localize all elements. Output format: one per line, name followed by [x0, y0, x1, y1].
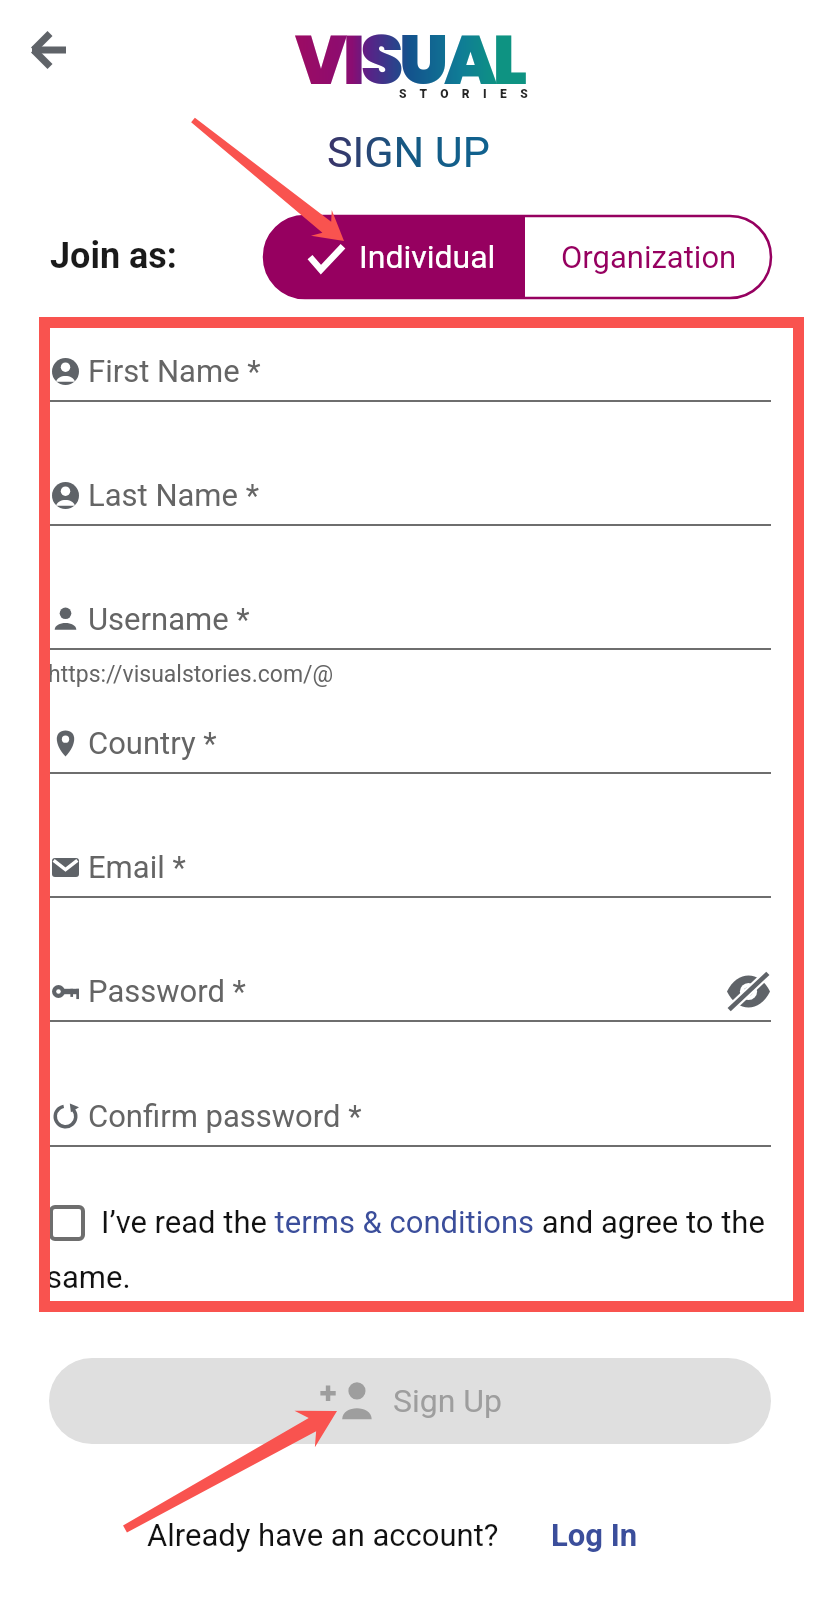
staticText: S T O R I E S [399, 87, 533, 101]
button[interactable]: First Name * [52, 347, 771, 395]
staticText: Already have an account? [147, 1517, 499, 1553]
staticText: same. [46, 1259, 131, 1295]
staticText: I’ve read the terms & conditions and agr… [101, 1204, 765, 1240]
staticText: Username * [88, 601, 250, 637]
button[interactable]: Email * [52, 843, 771, 891]
staticText: https://visualstories.com/@ [48, 661, 334, 688]
staticText: Country * [88, 725, 217, 761]
staticText: Password * [88, 973, 246, 1009]
button[interactable] [51, 1207, 83, 1239]
staticText: Last Name * [88, 477, 260, 513]
button[interactable]: Username * [52, 595, 771, 643]
button[interactable]: Last Name * [52, 471, 771, 519]
staticText: Individual [359, 238, 496, 276]
button[interactable]: Individual [264, 216, 525, 298]
staticText: First Name * [88, 353, 261, 389]
button[interactable]: Password * [52, 967, 771, 1015]
staticText: Organization [561, 239, 737, 275]
staticText: Join as: [50, 235, 177, 277]
staticText: Sign Up [393, 1382, 503, 1420]
button[interactable]: I’ve read the terms & conditions and agr… [101, 1204, 765, 1240]
button[interactable]: Log In [551, 1517, 638, 1553]
staticText: Confirm password * [88, 1098, 362, 1134]
staticText: Email * [88, 849, 186, 885]
staticText: SIGN UP [327, 127, 490, 177]
staticText: Log In [551, 1517, 638, 1553]
button[interactable]: Confirm password * [52, 1092, 771, 1140]
button[interactable]: Country * [52, 719, 771, 767]
button[interactable]: Back [12, 14, 84, 86]
button[interactable]: Organization [525, 216, 771, 298]
button[interactable]: Sign Up [49, 1358, 771, 1444]
staticText: VISUAL [295, 13, 524, 108]
button[interactable]: Show password [725, 968, 771, 1014]
